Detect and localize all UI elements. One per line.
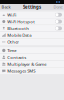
button[interactable]: Contacts [0,54,64,60]
button[interactable]: Other [0,39,64,45]
staticText: Bluetooth [7,25,29,31]
staticText: Messages SMS [7,68,35,74]
button[interactable]: Bluetooth [0,25,64,32]
button[interactable]: Multiplayer & Game [0,61,64,67]
staticText: Wi-Fi Hotspot [7,19,35,24]
staticText: Settings [23,4,41,10]
staticText: Mobile Data [7,32,31,38]
button[interactable]: Wi-Fi [0,11,64,18]
staticText: Wi-Fi [7,12,16,18]
button[interactable]: Time [0,47,64,54]
button[interactable]: Done [53,4,64,10]
button[interactable]: Back [0,4,10,10]
staticText: Time [7,47,16,53]
staticText: Back [1,4,10,10]
button[interactable]: Messages SMS [0,68,64,74]
button[interactable]: Mobile Data [0,32,64,38]
staticText: Done [53,4,62,10]
staticText: Contacts [7,54,26,60]
button[interactable]: Wi-Fi Hotspot [0,18,64,25]
staticText: Other [7,39,19,45]
staticText: Multiplayer & Game [7,61,46,67]
